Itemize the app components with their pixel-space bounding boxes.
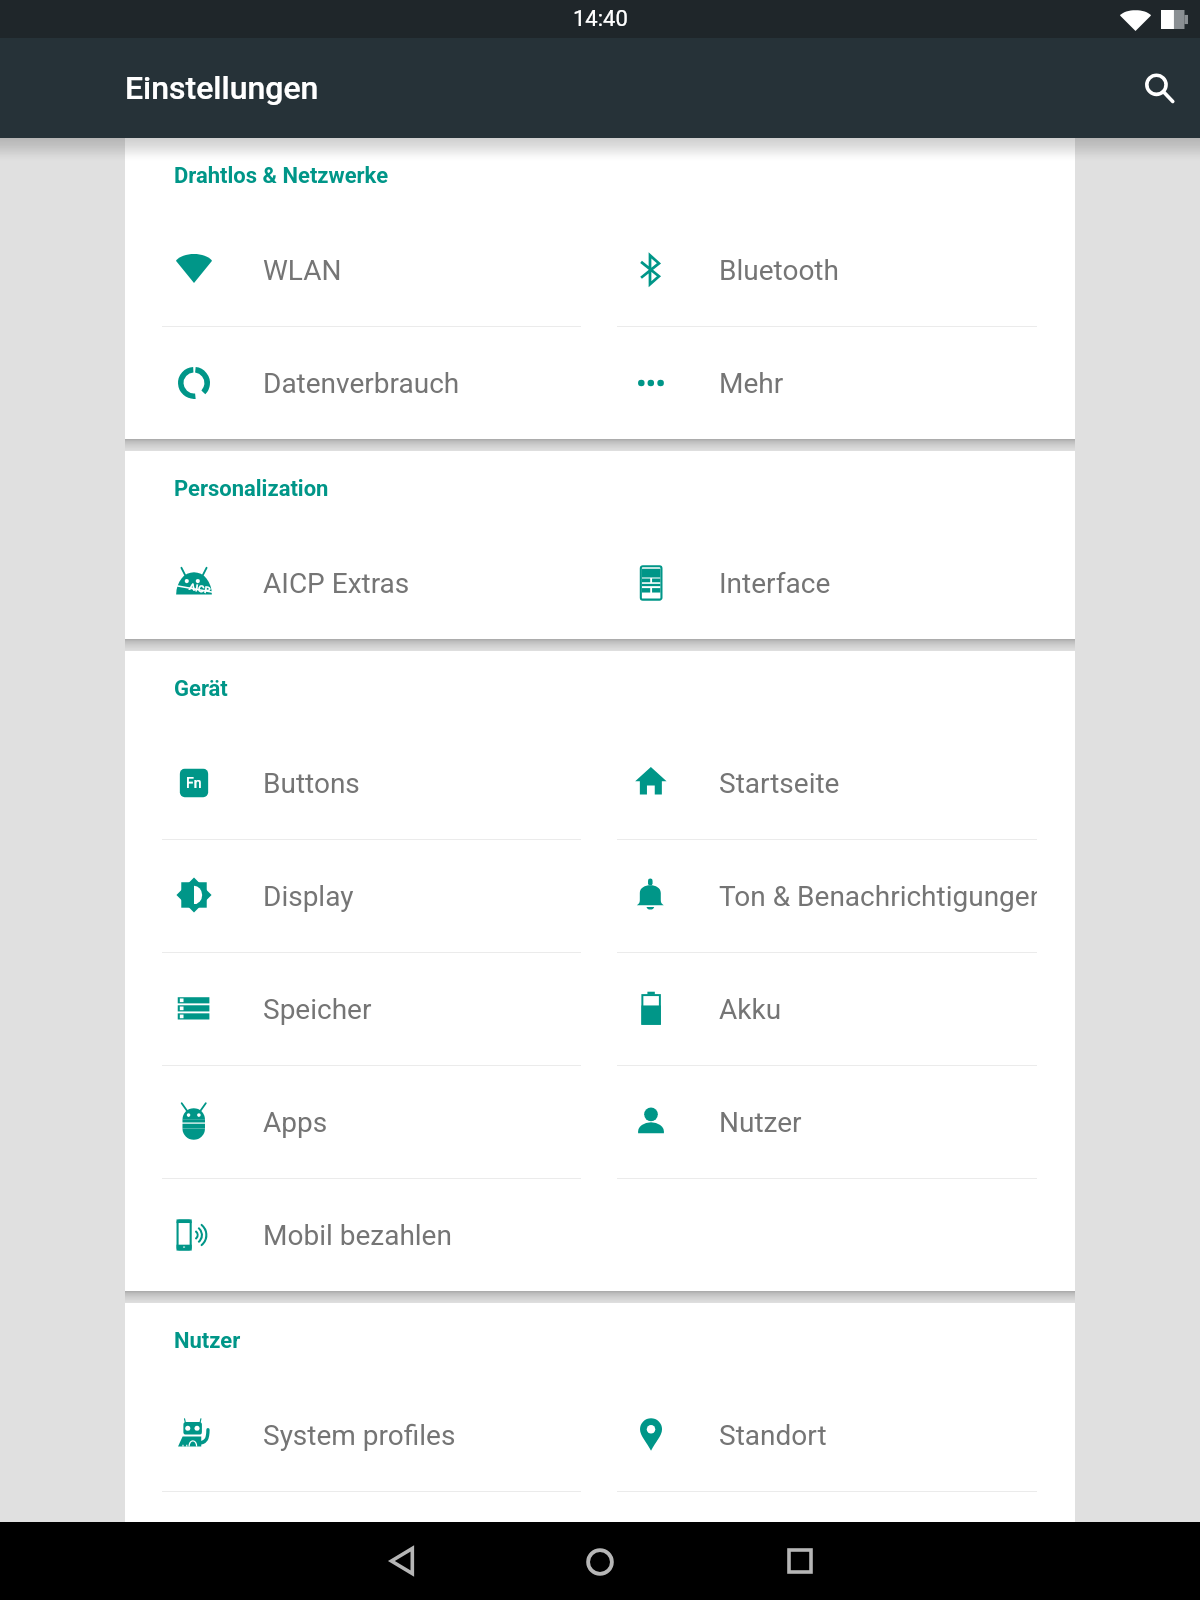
staticText: AICP [188,581,212,596]
staticText: 14:40 [573,6,628,32]
staticText: Gerät [174,676,228,702]
staticText: Fn [186,775,202,791]
button[interactable]: Interface [581,527,1037,639]
button[interactable]: Mehr [581,327,1037,439]
staticText: Bluetooth [719,254,839,287]
button[interactable]: Bluetooth [581,214,1037,326]
staticText: Startseite [719,767,840,800]
button[interactable]: Back [375,1534,429,1588]
staticText: Nutzer [719,1106,802,1139]
button[interactable]: Mobil bezahlen [125,1179,581,1291]
button[interactable]: AICP [125,527,581,639]
button[interactable]: Akku [581,953,1037,1065]
button[interactable]: Search [1135,64,1183,112]
staticText: AICP Extras [263,567,410,600]
button[interactable]: Speicher [125,953,581,1065]
staticText: Mehr [719,367,784,400]
staticText: System profiles [263,1419,456,1452]
button[interactable]: Apps [125,1066,581,1178]
button[interactable]: Ton & Benachrichtigungen [581,840,1037,952]
staticText: Interface [719,567,831,600]
staticText: Nutzer [174,1328,241,1354]
staticText: Standort [719,1419,827,1452]
staticText: Drahtlos & Netzwerke [174,163,389,189]
button[interactable]: WLAN [125,214,581,326]
button[interactable]: Display [125,840,581,952]
staticText: WLAN [263,254,342,287]
button[interactable]: Startseite [581,727,1037,839]
staticText: Apps [263,1106,328,1139]
staticText: Einstellungen [125,69,319,107]
button[interactable]: Recents [773,1534,827,1588]
staticText: Personalization [174,476,329,502]
button[interactable]: Standort [581,1379,1037,1491]
staticText: Ton & Benachrichtigungen [719,880,1037,913]
button[interactable]: Fn [125,727,581,839]
button[interactable]: Nutzer [581,1066,1037,1178]
staticText: Akku [719,993,782,1026]
button[interactable]: Home [573,1535,627,1589]
staticText: Datenverbrauch [263,367,460,400]
staticText: Mobil bezahlen [263,1219,452,1252]
staticText: Buttons [263,767,360,800]
button[interactable]: Datenverbrauch [125,327,581,439]
staticText: Speicher [263,993,372,1026]
button[interactable]: System profiles [125,1379,581,1491]
staticText: Display [263,880,354,913]
